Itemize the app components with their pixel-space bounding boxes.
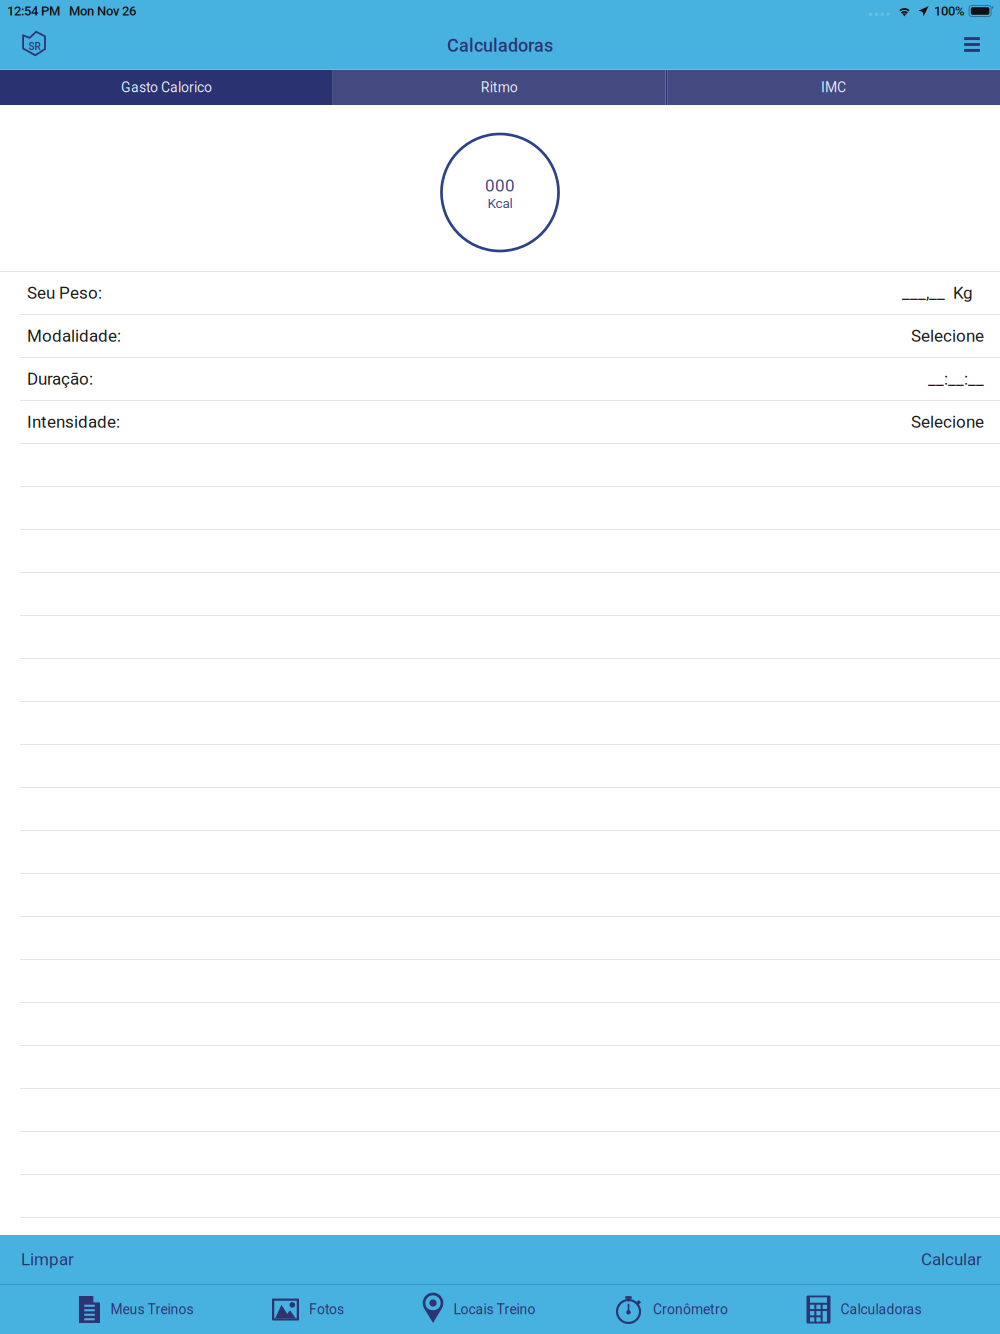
button[interactable]: Locais Treino — [422, 1284, 535, 1334]
staticText: Locais Treino — [453, 1301, 535, 1318]
staticText: Calculadoras — [447, 35, 553, 56]
staticText: Ritmo — [481, 79, 518, 96]
staticText: Seu Peso: — [27, 283, 102, 303]
button[interactable]: Duração: — [0, 358, 1000, 401]
staticText: Fotos — [309, 1301, 344, 1318]
button[interactable]: Ritmo — [333, 70, 666, 105]
button[interactable]: Calcular — [903, 1235, 1000, 1284]
staticText: 12:54 PM — [7, 3, 60, 19]
button[interactable]: Menu — [949, 23, 995, 67]
button[interactable]: Meus Treinos — [78, 1284, 193, 1334]
staticText: Selecione — [911, 412, 984, 432]
button[interactable]: Gasto Calorico — [0, 70, 333, 105]
staticText: Selecione — [911, 326, 984, 346]
staticText: SR — [28, 41, 40, 52]
button[interactable]: Cronômetro — [614, 1284, 728, 1334]
staticText: 000 — [485, 176, 515, 195]
staticText: IMC — [821, 79, 846, 96]
button[interactable]: Calculadoras — [806, 1284, 921, 1334]
staticText: ___,__ — [902, 283, 945, 303]
staticText: Modalidade: — [27, 326, 121, 346]
button[interactable]: Seu Peso: — [0, 272, 1000, 315]
button[interactable]: IMC — [667, 70, 1000, 105]
staticText: Meus Treinos — [110, 1301, 193, 1318]
staticText: Intensidade: — [27, 412, 120, 432]
staticText: Limpar — [21, 1249, 74, 1269]
staticText: Kg — [953, 283, 973, 303]
staticText: Kcal — [487, 196, 512, 211]
staticText: __:__:__ — [928, 369, 984, 389]
button[interactable]: Limpar — [0, 1235, 95, 1284]
staticText: Mon Nov 26 — [69, 3, 136, 19]
button[interactable]: Intensidade: — [0, 401, 1000, 444]
staticText: Calculadoras — [840, 1301, 921, 1318]
staticText: 100% — [934, 3, 965, 19]
staticText: Gasto Calorico — [121, 79, 212, 96]
button[interactable]: Modalidade: — [0, 315, 1000, 358]
staticText: Cronômetro — [653, 1301, 728, 1318]
staticText: Duração: — [27, 369, 93, 389]
button[interactable]: Fotos — [272, 1284, 344, 1334]
button[interactable]: SR Home — [11, 23, 57, 67]
staticText: Calcular — [921, 1249, 982, 1269]
